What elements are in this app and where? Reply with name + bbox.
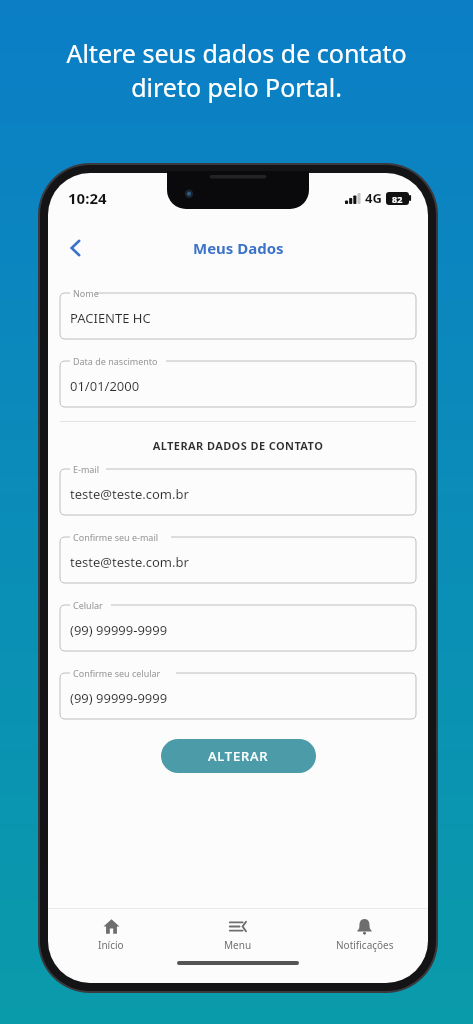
staticText: 4G (365, 189, 382, 207)
staticText: ALTERAR DADOS DE CONTATO (60, 438, 416, 453)
staticText: PACIENTE HC (70, 309, 151, 327)
staticText: Confirme seu e-mail (73, 531, 159, 543)
button[interactable]: Nome (60, 287, 416, 339)
staticText: E-mail (73, 463, 100, 475)
button[interactable]: Notificações (301, 909, 428, 961)
button[interactable]: E-mail (60, 463, 416, 515)
staticText: Meus Dados (193, 238, 284, 258)
staticText: (99) 99999-9999 (70, 689, 168, 707)
staticText: Altere seus dados de contato direto pelo… (66, 36, 407, 104)
staticText: Menu (224, 938, 252, 952)
staticText: Nome (73, 287, 99, 299)
button[interactable]: Confirme seu celular (60, 667, 416, 719)
button[interactable]: Celular (60, 599, 416, 651)
button[interactable]: Data de nascimento (60, 355, 416, 407)
staticText: teste@teste.com.br (70, 553, 189, 571)
staticText: Notificações (336, 938, 394, 952)
staticText: Confirme seu celular (73, 667, 161, 679)
staticText: Data de nascimento (73, 355, 158, 367)
staticText: Celular (73, 599, 103, 611)
button[interactable]: Início (48, 909, 174, 961)
staticText: ALTERAR (208, 747, 269, 765)
staticText: 10:24 (68, 188, 107, 208)
staticText: (99) 99999-9999 (70, 621, 168, 639)
staticText: 01/01/2000 (70, 377, 140, 395)
button[interactable]: Confirme seu e-mail (60, 531, 416, 583)
button[interactable]: Menu (174, 909, 301, 961)
staticText: Início (98, 938, 124, 952)
staticText: 82 (392, 193, 403, 205)
button[interactable]: ALTERAR (161, 739, 316, 773)
button[interactable]: Voltar (56, 231, 96, 265)
staticText: teste@teste.com.br (70, 485, 189, 503)
